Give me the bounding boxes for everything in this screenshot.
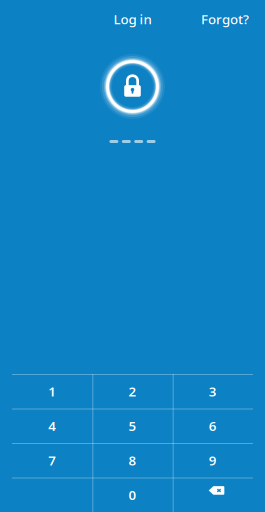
button[interactable]: 0	[92, 477, 173, 512]
button[interactable]: 6	[173, 408, 253, 443]
staticText: Forgot?	[201, 10, 249, 28]
staticText: 6	[209, 417, 217, 435]
button[interactable]: 9	[173, 443, 253, 477]
staticText: Log in	[113, 10, 151, 28]
button[interactable]: 5	[92, 408, 173, 443]
staticText: 8	[128, 451, 136, 469]
staticText: 4	[48, 417, 56, 435]
button[interactable]: 7	[12, 443, 92, 477]
staticText: 0	[128, 486, 136, 504]
button[interactable]: 4	[12, 408, 92, 443]
staticText: 3	[209, 382, 217, 400]
button[interactable]: 3	[173, 374, 253, 408]
button[interactable]: Forgot?	[201, 4, 249, 34]
staticText: 1	[48, 382, 56, 400]
button[interactable]: 2	[92, 374, 173, 408]
button[interactable]: Delete	[173, 477, 253, 512]
button[interactable]: 8	[92, 443, 173, 477]
staticText: 9	[209, 451, 217, 469]
staticText: 7	[48, 451, 56, 469]
staticText: 5	[128, 417, 136, 435]
button[interactable]: Log in	[113, 4, 151, 34]
button[interactable]: 1	[12, 374, 92, 408]
staticText: 2	[128, 382, 136, 400]
